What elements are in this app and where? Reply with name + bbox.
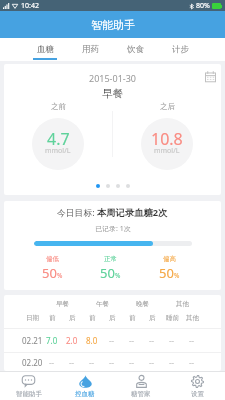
- staticText: 智能助手: [16, 390, 42, 398]
- staticText: 今日目标:: [57, 207, 97, 219]
- staticText: --: [49, 357, 55, 368]
- staticText: 7.0: [46, 335, 58, 346]
- staticText: 智能助手: [91, 18, 135, 32]
- button[interactable]: 02.21: [22, 329, 202, 352]
- staticText: %: [174, 271, 180, 280]
- staticText: --: [169, 335, 175, 346]
- staticText: 本周记录血糖2次: [97, 206, 168, 219]
- staticText: 血糖: [37, 44, 54, 55]
- staticText: 正常: [104, 255, 117, 263]
- staticText: --: [149, 357, 155, 368]
- staticText: mmol/L: [154, 146, 180, 156]
- button[interactable]: 糖管家: [113, 372, 169, 400]
- staticText: %: [115, 271, 121, 280]
- staticText: 10.8: [151, 128, 183, 150]
- staticText: 50: [100, 264, 115, 282]
- button[interactable]: 智能助手: [0, 372, 57, 400]
- staticText: --: [109, 357, 115, 368]
- staticText: 糖管家: [131, 390, 151, 398]
- staticText: 设置: [191, 390, 204, 398]
- staticText: 后: [109, 314, 116, 322]
- staticText: --: [89, 357, 95, 368]
- staticText: 之后: [160, 102, 175, 111]
- staticText: --: [149, 335, 155, 346]
- staticText: --: [109, 335, 115, 346]
- staticText: 10:42: [21, 1, 39, 11]
- staticText: --: [69, 357, 75, 368]
- staticText: %: [57, 271, 63, 280]
- button[interactable]: Select date: [205, 71, 216, 82]
- staticText: 50: [42, 264, 57, 282]
- staticText: 2.0: [66, 335, 78, 346]
- staticText: 饮食: [127, 44, 144, 55]
- staticText: 控血糖: [75, 390, 95, 398]
- staticText: 偏高: [163, 255, 176, 263]
- staticText: 计步: [172, 44, 189, 55]
- button[interactable]: 饮食: [113, 38, 158, 61]
- staticText: 8.0: [86, 335, 98, 346]
- staticText: 后: [149, 314, 156, 322]
- staticText: 02.21: [22, 335, 42, 346]
- staticText: --: [189, 335, 195, 346]
- staticText: 早餐: [102, 87, 123, 100]
- staticText: 早餐: [56, 300, 69, 308]
- staticText: 前: [89, 314, 96, 322]
- staticText: 睡前: [166, 314, 179, 322]
- button[interactable]: 控血糖: [57, 372, 113, 400]
- staticText: 4.7: [47, 128, 70, 150]
- staticText: --: [129, 335, 135, 346]
- staticText: 其他: [186, 314, 199, 322]
- staticText: 偏低: [46, 255, 59, 263]
- staticText: 2015-01-30: [89, 72, 136, 84]
- staticText: 后: [69, 314, 76, 322]
- staticText: --: [129, 357, 135, 368]
- staticText: 之前: [51, 102, 66, 111]
- staticText: --: [169, 357, 175, 368]
- button[interactable]: 计步: [158, 38, 203, 61]
- staticText: 其他: [176, 300, 189, 308]
- button[interactable]: 02.20: [22, 353, 202, 371]
- staticText: 午餐: [96, 300, 109, 308]
- staticText: 用药: [82, 44, 99, 55]
- staticText: 已记录: 1次: [95, 224, 131, 234]
- staticText: 晚餐: [136, 300, 149, 308]
- staticText: 50: [159, 264, 174, 282]
- staticText: 前: [129, 314, 136, 322]
- button[interactable]: 血糖: [22, 38, 68, 61]
- button[interactable]: 用药: [68, 38, 113, 61]
- staticText: 02.20: [22, 357, 42, 368]
- staticText: 日期: [26, 314, 39, 322]
- staticText: mmol/L: [45, 146, 71, 156]
- button[interactable]: 设置: [169, 372, 225, 400]
- staticText: 前: [49, 314, 56, 322]
- staticText: --: [189, 357, 195, 368]
- staticText: 80%: [196, 1, 210, 11]
